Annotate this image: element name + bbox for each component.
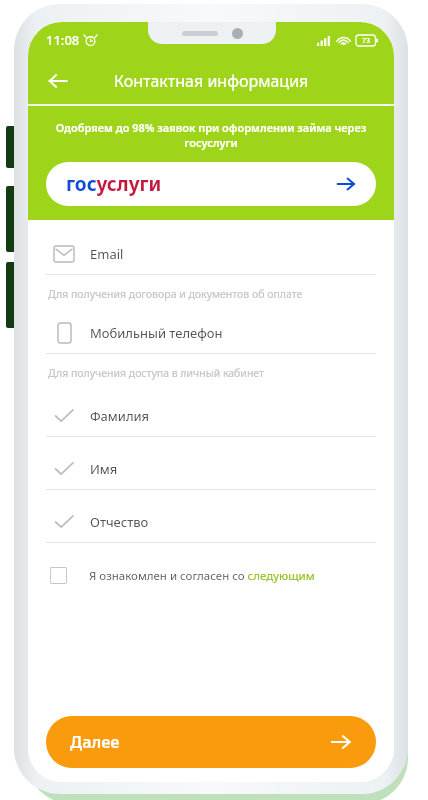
- button[interactable]: Назад: [36, 59, 80, 103]
- button[interactable]: Имя: [46, 449, 376, 490]
- staticText: Далее: [70, 731, 120, 753]
- staticText: Фамилия: [90, 407, 150, 425]
- button[interactable]: госуслуги: [46, 162, 376, 206]
- button[interactable]: Email: [46, 234, 376, 275]
- staticText: госуслуги: [66, 171, 162, 197]
- staticText: Я ознакомлен и согласен со следующим: [89, 568, 315, 584]
- staticText: Одобряем до 98% заявок при оформлении за…: [50, 120, 372, 150]
- staticText: 73: [362, 36, 371, 46]
- staticText: 11:08: [46, 31, 80, 49]
- staticText: Имя: [90, 460, 118, 478]
- staticText: Контактная информация: [114, 70, 309, 92]
- button[interactable]: Мобильный телефон: [46, 313, 376, 354]
- staticText: Для получения договора и документов об о…: [48, 287, 303, 301]
- button[interactable]: Далее: [46, 716, 376, 768]
- staticText: Для получения доступа в личный кабинет: [48, 366, 264, 380]
- button[interactable]: Отчество: [46, 502, 376, 543]
- staticText: Мобильный телефон: [90, 324, 223, 342]
- button[interactable]: Фамилия: [46, 396, 376, 437]
- staticText: Email: [90, 245, 124, 263]
- button[interactable]: Я ознакомлен и согласен со следующим: [46, 563, 376, 588]
- staticText: Отчество: [90, 513, 149, 531]
